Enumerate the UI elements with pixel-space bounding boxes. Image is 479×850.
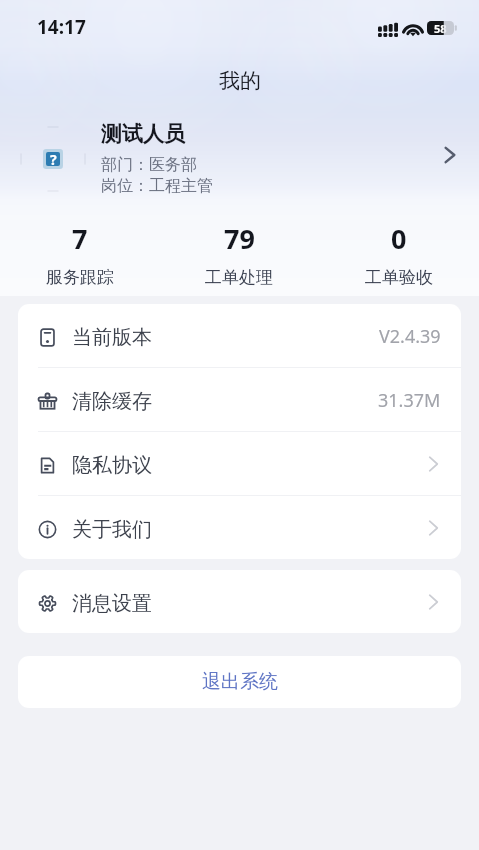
staticText: 0 xyxy=(391,220,407,257)
staticText: 7 xyxy=(72,220,88,257)
staticText: V2.4.39 xyxy=(379,324,441,349)
staticText: 清除缓存 xyxy=(72,389,152,414)
staticText: 58 xyxy=(434,21,447,35)
button[interactable]: 0 xyxy=(319,220,479,288)
staticText: 14:17 xyxy=(37,14,86,40)
button[interactable]: 关于我们 xyxy=(18,496,461,559)
button[interactable]: 清除缓存 xyxy=(18,368,461,431)
button[interactable]: 7 xyxy=(0,220,159,288)
staticText: 隐私协议 xyxy=(72,453,152,478)
staticText: 退出系统 xyxy=(202,670,278,694)
staticText: 工单处理 xyxy=(205,267,273,288)
staticText: 部门：医务部 xyxy=(101,155,197,175)
button[interactable]: 退出系统 xyxy=(18,656,461,708)
button[interactable]: 隐私协议 xyxy=(18,432,461,495)
staticText: 当前版本 xyxy=(72,325,152,350)
staticText: ? xyxy=(50,150,57,169)
staticText: 服务跟踪 xyxy=(46,267,114,288)
staticText: 关于我们 xyxy=(72,517,152,542)
staticText: 消息设置 xyxy=(72,591,152,616)
staticText: 58 xyxy=(434,21,447,35)
staticText: 岗位：工程主管 xyxy=(101,176,213,196)
staticText: 测试人员 xyxy=(101,121,185,147)
button[interactable]: 79 xyxy=(159,220,319,288)
staticText: 79 xyxy=(224,220,255,257)
button[interactable]: ? xyxy=(0,121,479,196)
other: Profile details xyxy=(440,145,460,165)
staticText: 工单验收 xyxy=(365,267,433,288)
button[interactable]: 消息设置 xyxy=(18,570,461,633)
staticText: 我的 xyxy=(219,68,261,94)
button[interactable]: 当前版本 xyxy=(18,304,461,367)
staticText: 31.37M xyxy=(378,388,441,413)
